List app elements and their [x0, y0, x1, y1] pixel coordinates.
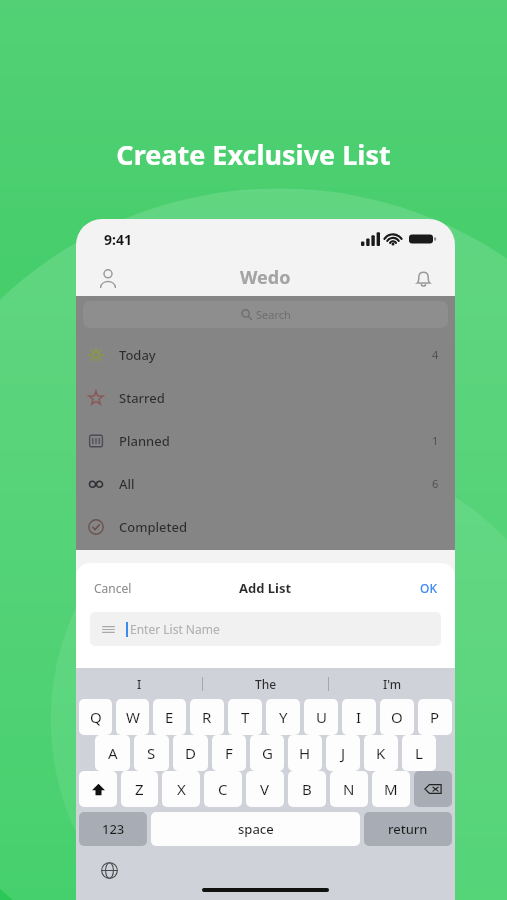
- button[interactable]: D: [173, 735, 208, 771]
- button[interactable]: Change keyboard: [96, 857, 122, 883]
- staticText: T: [241, 707, 250, 727]
- staticText: space: [238, 820, 274, 838]
- staticText: Create Exclusive List: [0, 136, 507, 173]
- button[interactable]: Planned: [76, 419, 455, 462]
- button[interactable]: B: [288, 771, 326, 807]
- staticText: I: [356, 707, 362, 727]
- staticText: OK: [420, 580, 437, 596]
- button[interactable]: W: [116, 699, 149, 735]
- button[interactable]: I'm: [329, 668, 455, 699]
- staticText: X: [177, 779, 186, 799]
- staticText: J: [341, 743, 346, 763]
- staticText: Enter List Name: [130, 621, 220, 637]
- staticText: M: [384, 779, 398, 799]
- staticText: A: [108, 743, 118, 763]
- staticText: G: [262, 743, 273, 763]
- button[interactable]: OK: [420, 580, 437, 596]
- button[interactable]: F: [212, 735, 246, 771]
- staticText: K: [376, 743, 386, 763]
- button[interactable]: L: [402, 735, 436, 771]
- button[interactable]: K: [364, 735, 398, 771]
- button[interactable]: Shift: [79, 771, 117, 807]
- staticText: E: [165, 707, 174, 727]
- button[interactable]: R: [190, 699, 224, 735]
- staticText: O: [391, 707, 403, 727]
- button[interactable]: I: [76, 668, 203, 699]
- button[interactable]: space: [151, 812, 360, 846]
- button[interactable]: 123: [79, 812, 147, 846]
- button[interactable]: O: [380, 699, 414, 735]
- button[interactable]: X: [162, 771, 200, 807]
- staticText: 4: [432, 347, 439, 362]
- button[interactable]: The: [203, 668, 329, 699]
- staticText: V: [260, 779, 270, 799]
- staticText: B: [302, 779, 312, 799]
- button[interactable]: C: [204, 771, 242, 807]
- staticText: N: [343, 779, 355, 799]
- button[interactable]: V: [246, 771, 284, 807]
- staticText: I'm: [383, 676, 402, 692]
- button[interactable]: A: [95, 735, 130, 771]
- staticText: F: [225, 743, 233, 763]
- staticText: The: [255, 676, 277, 692]
- staticText: U: [316, 707, 327, 727]
- button[interactable]: Completed: [76, 505, 455, 548]
- staticText: Completed: [119, 518, 188, 536]
- button[interactable]: S: [134, 735, 169, 771]
- staticText: C: [218, 779, 228, 799]
- staticText: I: [137, 676, 142, 692]
- staticText: R: [202, 707, 212, 727]
- button[interactable]: return: [364, 812, 452, 846]
- staticText: P: [430, 707, 440, 727]
- button[interactable]: Starred: [76, 376, 455, 419]
- staticText: Add List: [239, 579, 292, 597]
- button[interactable]: Cancel: [94, 580, 132, 596]
- button[interactable]: I: [342, 699, 376, 735]
- staticText: S: [147, 743, 156, 763]
- button[interactable]: T: [228, 699, 262, 735]
- staticText: Z: [135, 779, 144, 799]
- staticText: 6: [432, 476, 439, 491]
- button[interactable]: U: [304, 699, 338, 735]
- button[interactable]: All: [76, 462, 455, 505]
- button[interactable]: Y: [266, 699, 300, 735]
- button[interactable]: P: [418, 699, 452, 735]
- button[interactable]: M: [372, 771, 410, 807]
- staticText: Search: [256, 307, 291, 322]
- staticText: Today: [119, 346, 156, 364]
- staticText: L: [415, 743, 423, 763]
- staticText: Starred: [119, 389, 165, 407]
- button[interactable]: G: [250, 735, 284, 771]
- staticText: All: [119, 475, 135, 493]
- button[interactable]: Enter List Name: [90, 612, 441, 646]
- button[interactable]: Q: [79, 699, 112, 735]
- button[interactable]: H: [288, 735, 322, 771]
- staticText: 123: [102, 820, 125, 838]
- button[interactable]: Today: [76, 333, 455, 376]
- staticText: Wedo: [240, 265, 291, 290]
- staticText: 1: [432, 433, 439, 448]
- staticText: D: [185, 743, 196, 763]
- button[interactable]: Backspace: [414, 771, 452, 807]
- button[interactable]: E: [153, 699, 186, 735]
- staticText: return: [388, 820, 428, 838]
- staticText: W: [126, 707, 140, 727]
- staticText: Y: [279, 707, 288, 727]
- button[interactable]: J: [326, 735, 360, 771]
- staticText: H: [299, 743, 311, 763]
- staticText: Cancel: [94, 580, 132, 596]
- button[interactable]: Z: [121, 771, 158, 807]
- staticText: Planned: [119, 432, 170, 450]
- button[interactable]: N: [330, 771, 368, 807]
- button[interactable]: Notifications: [405, 260, 441, 296]
- button[interactable]: Profile: [90, 260, 126, 296]
- staticText: 9:41: [104, 230, 132, 249]
- staticText: Q: [90, 707, 102, 727]
